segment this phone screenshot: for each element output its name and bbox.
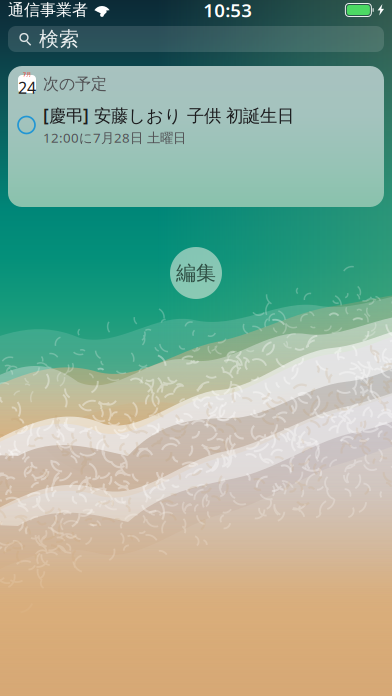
staticText: 10:53 <box>203 0 252 22</box>
button[interactable]: [慶弔] 安藤しおり 子供 初誕生日 <box>13 102 379 148</box>
staticText: 通信事業者 <box>8 0 88 20</box>
staticText: 7月 <box>23 71 31 78</box>
staticText: 12:00に7月28日 土曜日 <box>43 129 186 146</box>
button[interactable]: 検索 <box>8 26 384 52</box>
button[interactable]: 7月 <box>13 66 379 102</box>
staticText: 検索 <box>39 27 79 51</box>
button[interactable]: 編集 <box>170 247 222 299</box>
staticText: 24 <box>18 77 36 98</box>
staticText: [慶弔] 安藤しおり 子供 初誕生日 <box>43 104 294 127</box>
staticText: 次の予定 <box>43 74 107 94</box>
staticText: 編集 <box>176 261 216 285</box>
